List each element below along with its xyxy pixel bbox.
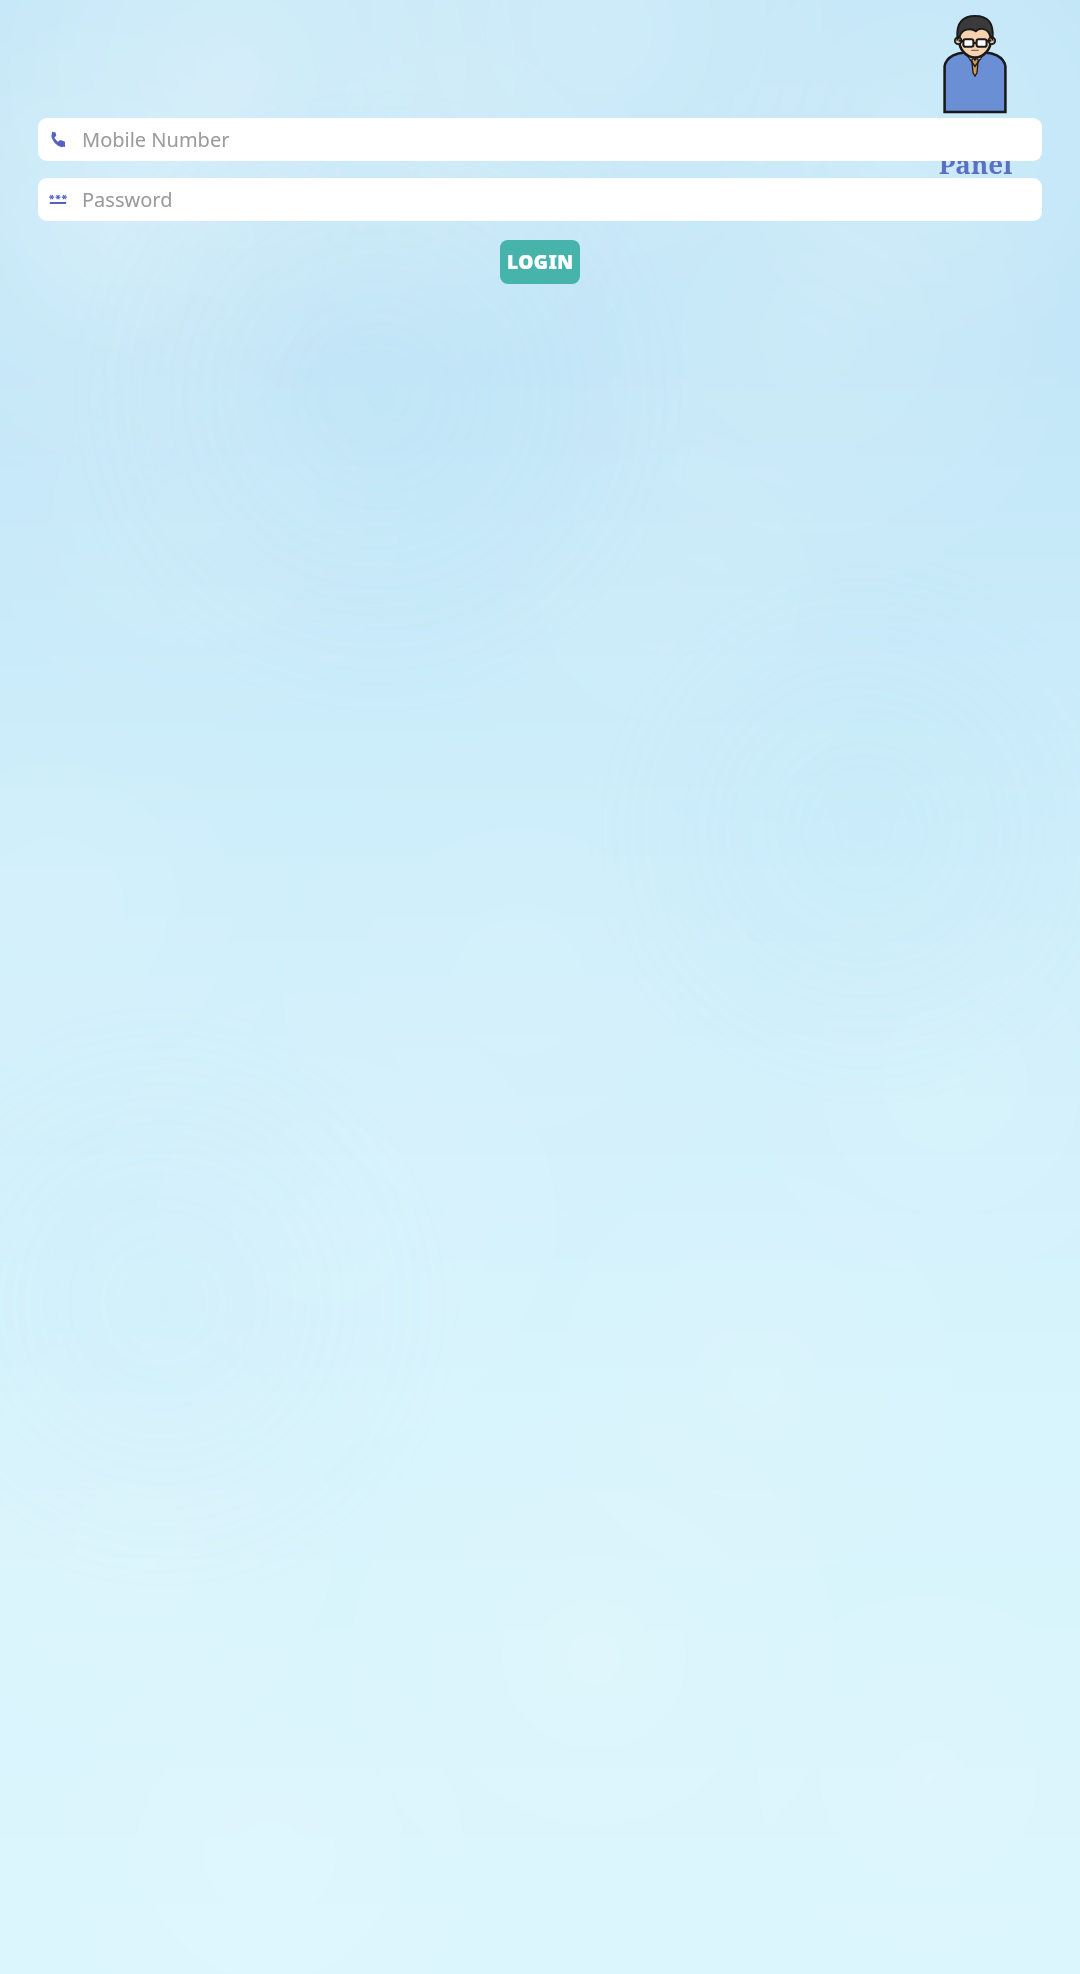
staticText: Teachers' Panel [912, 116, 1039, 182]
other: Mobile number [48, 130, 68, 150]
button[interactable]: Password [38, 178, 1042, 221]
staticText: Password [82, 186, 173, 213]
button[interactable]: LOGIN [500, 240, 580, 284]
staticText: Mobile Number [82, 126, 230, 153]
button[interactable]: Mobile number [38, 118, 1042, 161]
staticText: LOGIN [507, 249, 574, 275]
other: Password [48, 190, 68, 210]
other: Teacher avatar [935, 12, 1015, 112]
